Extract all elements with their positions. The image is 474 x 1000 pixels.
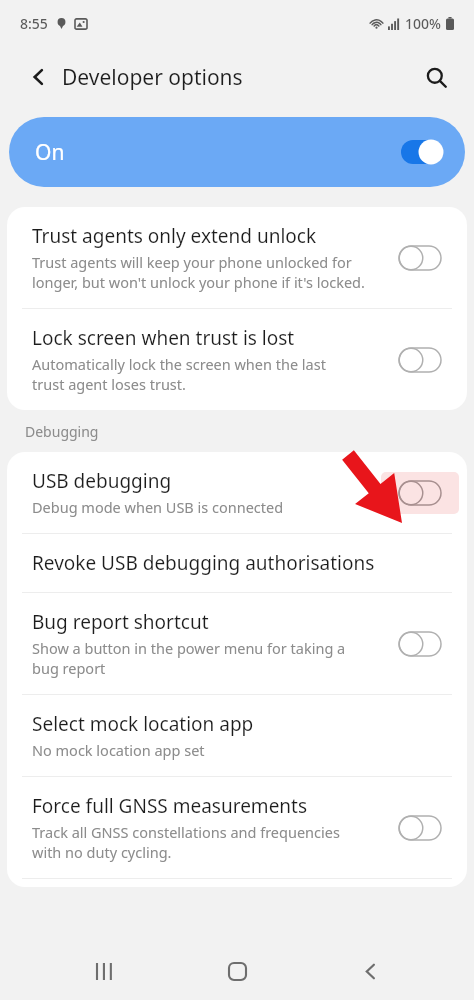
staticText: 100% <box>405 14 441 33</box>
button[interactable]: Recents <box>77 943 133 999</box>
staticText: Debugging <box>25 422 99 441</box>
button[interactable]: On <box>9 117 465 187</box>
button[interactable]: Trust agents only extend unlock <box>7 207 467 308</box>
staticText: Bug report shortcut <box>32 609 209 635</box>
button[interactable]: Search <box>418 59 454 95</box>
staticText: On <box>35 138 65 167</box>
staticText: Automatically lock the screen when the l… <box>32 354 326 394</box>
button[interactable]: Back <box>22 60 56 94</box>
button[interactable]: Force full GNSS measurements <box>7 777 467 878</box>
staticText: No mock location app set <box>32 740 205 760</box>
button[interactable]: Bug report shortcut <box>7 593 467 694</box>
button[interactable]: USB debugging <box>7 452 467 533</box>
button[interactable]: Lock screen when trust is lost <box>7 309 467 410</box>
staticText: Select mock location app <box>32 711 254 737</box>
staticText: Force full GNSS measurements <box>32 793 308 819</box>
button[interactable]: Back <box>342 943 398 999</box>
staticText: Lock screen when trust is lost <box>32 325 295 351</box>
staticText: Debug mode when USB is connected <box>32 497 284 517</box>
staticText: Developer options <box>62 63 243 92</box>
button[interactable]: Select mock location app <box>7 695 467 776</box>
button[interactable]: Revoke USB debugging authorisations <box>7 534 467 592</box>
staticText: USB debugging <box>32 468 172 494</box>
staticText: Trust agents only extend unlock <box>32 223 317 249</box>
staticText: Show a button in the power menu for taki… <box>32 638 346 678</box>
staticText: 8:55 <box>20 14 48 33</box>
button[interactable]: Home <box>209 943 265 999</box>
staticText: Revoke USB debugging authorisations <box>32 550 375 576</box>
staticText: Trust agents will keep your phone unlock… <box>32 252 365 292</box>
staticText: Track all GNSS constellations and freque… <box>32 822 340 862</box>
